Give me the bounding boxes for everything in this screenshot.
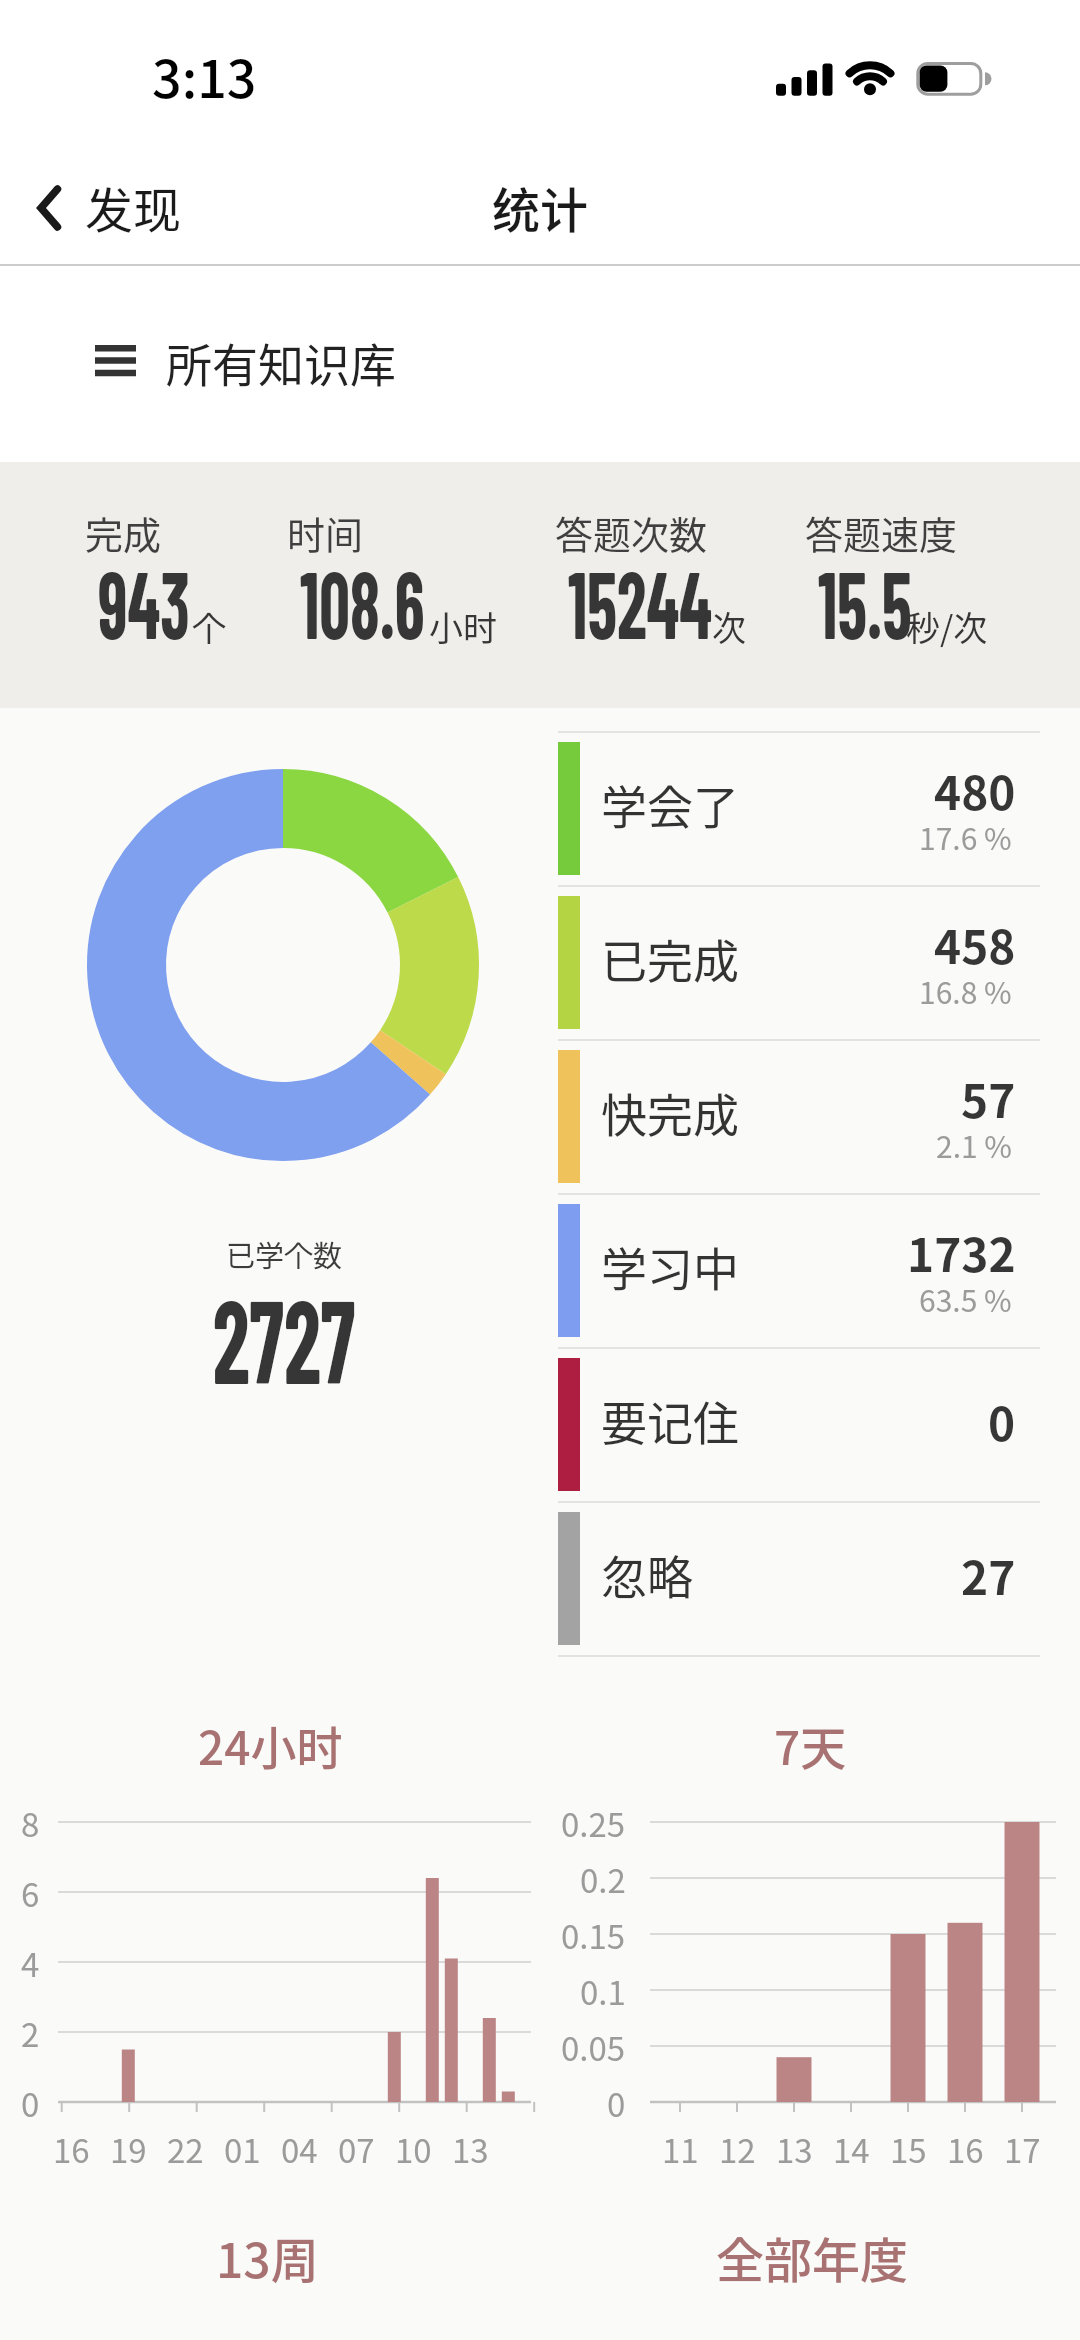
staticText: 27 (961, 1542, 1016, 1609)
staticText: 0.05 (561, 2023, 626, 2071)
staticText: 3:13 (152, 38, 257, 113)
staticText: 次 (712, 602, 746, 651)
staticText: 63.5 % (919, 1277, 1012, 1320)
button[interactable]: 学习中 (558, 1193, 1040, 1347)
button[interactable]: 要记住 (558, 1347, 1040, 1501)
button[interactable]: 学会了 (558, 731, 1040, 885)
staticText: 17 (1004, 2125, 1041, 2173)
staticText: 个 (192, 602, 226, 651)
staticText: 57 (961, 1065, 1016, 1132)
staticText: 13周 (216, 2222, 319, 2292)
staticText: 小时 (429, 602, 497, 651)
staticText: 学会了 (601, 771, 739, 838)
staticText: 16 (947, 2125, 984, 2173)
staticText: 要记住 (601, 1387, 739, 1454)
staticText: 458 (934, 911, 1016, 978)
staticText: 8 (21, 1799, 40, 1847)
staticText: 答题次数 (555, 505, 708, 560)
staticText: 时间 (287, 505, 364, 560)
button[interactable]: 所有知识库 (80, 315, 420, 405)
staticText: 2.1 % (936, 1123, 1012, 1166)
staticText: 统计 (492, 172, 589, 242)
staticText: 22 (167, 2125, 204, 2173)
staticText: 1732 (907, 1219, 1016, 1286)
staticText: 7天 (774, 1712, 847, 1779)
staticText: 0 (607, 2079, 626, 2127)
staticText: 19 (110, 2125, 147, 2173)
staticText: 480 (934, 757, 1016, 824)
staticText: 0.15 (561, 1911, 626, 1959)
staticText: 已完成 (601, 925, 739, 992)
staticText: 已学个数 (226, 1233, 343, 1275)
staticText: 108.6 (300, 545, 425, 658)
staticText: 秒/次 (906, 602, 988, 651)
button[interactable]: 忽略 (558, 1501, 1040, 1655)
staticText: 12 (719, 2125, 756, 2173)
staticText: 2 (21, 2009, 40, 2057)
staticText: 6 (21, 1869, 40, 1917)
staticText: 13 (776, 2125, 813, 2173)
staticText: 0.2 (580, 1855, 626, 1903)
staticText: 17.6 % (919, 815, 1012, 858)
staticText: 忽略 (601, 1541, 693, 1608)
staticText: 完成 (85, 505, 162, 560)
button[interactable]: 已完成 (558, 885, 1040, 1039)
staticText: 4 (21, 1939, 40, 1987)
staticText: 10 (395, 2125, 432, 2173)
staticText: 04 (281, 2125, 318, 2173)
button[interactable]: 发现 (10, 170, 180, 250)
button[interactable]: 全部年度 (662, 2222, 962, 2292)
staticText: 答题速度 (805, 505, 958, 560)
staticText: 0 (988, 1388, 1016, 1455)
staticText: 快完成 (601, 1079, 739, 1146)
staticText: 15244 (568, 545, 713, 658)
staticText: 24小时 (198, 1712, 343, 1779)
staticText: 0 (21, 2079, 40, 2127)
staticText: 07 (338, 2125, 375, 2173)
staticText: 15.5 (818, 545, 912, 658)
button[interactable]: 13周 (117, 2222, 417, 2292)
staticText: 2727 (213, 1267, 355, 1407)
staticText: 14 (833, 2125, 870, 2173)
staticText: 0.25 (561, 1799, 626, 1847)
staticText: 全部年度 (716, 2222, 909, 2292)
staticText: 11 (662, 2125, 699, 2173)
staticText: 学习中 (601, 1233, 739, 1300)
staticText: 所有知识库 (166, 329, 396, 396)
staticText: 943 (98, 545, 190, 658)
staticText: 发现 (85, 172, 182, 242)
staticText: 15 (890, 2125, 927, 2173)
staticText: 16.8 % (919, 969, 1012, 1012)
staticText: 16 (53, 2125, 90, 2173)
staticText: 01 (224, 2125, 261, 2173)
staticText: 0.1 (580, 1967, 626, 2015)
button[interactable]: 快完成 (558, 1039, 1040, 1193)
staticText: 13 (452, 2125, 489, 2173)
